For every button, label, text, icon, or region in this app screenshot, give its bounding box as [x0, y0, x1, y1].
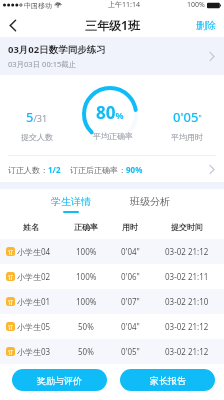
staticText: 删除 — [196, 19, 216, 32]
staticText: 小学生01 — [17, 296, 51, 307]
staticText: 100% — [187, 0, 205, 10]
button[interactable]: 订 — [0, 289, 224, 314]
staticText: 0'04" — [121, 246, 140, 257]
staticText: 订 — [8, 324, 13, 330]
staticText: 5/31 — [26, 108, 48, 126]
staticText: 03-02 21:11 — [165, 271, 209, 282]
button[interactable]: 学生详情 — [39, 189, 103, 215]
button[interactable]: 订 — [0, 339, 224, 364]
staticText: 50% — [78, 346, 94, 357]
button[interactable]: 奖励与评价 — [12, 369, 107, 391]
staticText: 0'04" — [121, 321, 140, 332]
staticText: 03-02 21:10 — [165, 296, 209, 307]
staticText: 平均用时 — [171, 132, 203, 142]
staticText: 家长报告 — [150, 375, 186, 386]
staticText: 小学生02 — [17, 271, 51, 282]
staticText: 订正人数：1/2 — [8, 164, 61, 175]
staticText: 上午11:14 — [108, 0, 140, 10]
button[interactable]: 订 — [0, 264, 224, 289]
button[interactable]: Back — [0, 13, 26, 37]
staticText: 奖励与评价 — [37, 375, 82, 386]
button[interactable]: 班级分析 — [118, 189, 182, 215]
staticText: 小学生05 — [17, 321, 51, 332]
button[interactable]: 订 — [0, 314, 224, 339]
staticText: 班级分析 — [130, 195, 170, 208]
staticText: 学生详情 — [51, 195, 91, 208]
staticText: 03月03日 00:15截止 — [8, 59, 77, 69]
staticText: 03-02 21:12 — [165, 246, 209, 257]
staticText: 80% — [96, 101, 124, 124]
staticText: 订 — [8, 299, 13, 305]
staticText: 小学生03 — [17, 346, 51, 357]
staticText: 提交人数 — [21, 132, 53, 142]
staticText: 100% — [76, 246, 97, 257]
button[interactable]: 家长报告 — [120, 369, 215, 391]
staticText: 0'05" — [173, 108, 202, 126]
staticText: 03-02 21:12 — [165, 346, 209, 357]
staticText: 小学生04 — [17, 246, 51, 257]
staticText: 0'05" — [121, 346, 140, 357]
staticText: 平均正确率 — [93, 131, 133, 141]
staticText: 提交时间 — [171, 222, 203, 232]
staticText: 订 — [8, 249, 13, 255]
button[interactable]: 订正人数：1/2 — [0, 156, 224, 182]
staticText: 订正后正确率：90% — [70, 164, 143, 175]
staticText: 0'06" — [121, 271, 140, 282]
staticText: 100% — [76, 271, 97, 282]
staticText: 三年级1班 — [85, 17, 140, 33]
staticText: 用时 — [122, 222, 138, 232]
staticText: 中国移动 — [24, 1, 52, 10]
staticText: 姓名 — [23, 222, 39, 232]
staticText: 订 — [8, 349, 13, 355]
button[interactable]: 03月02日数学同步练习 — [0, 37, 224, 75]
staticText: 50% — [78, 321, 94, 332]
staticText: 0'07" — [121, 296, 140, 307]
staticText: 正确率 — [74, 222, 98, 232]
staticText: 03月02日数学同步练习 — [8, 43, 106, 56]
staticText: 03-02 21:12 — [165, 321, 209, 332]
staticText: 订 — [8, 274, 13, 280]
button[interactable]: 订 — [0, 239, 224, 264]
button[interactable]: 删除 — [196, 13, 216, 37]
staticText: 100% — [76, 296, 97, 307]
